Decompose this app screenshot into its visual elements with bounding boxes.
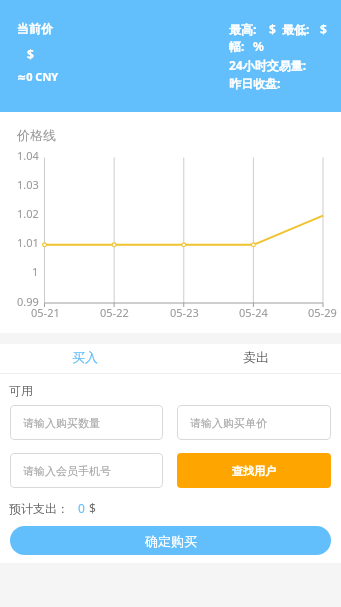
staticText: % [253, 38, 264, 54]
button[interactable]: 请输入购买单价 [177, 405, 331, 440]
staticText: 最高: [229, 21, 257, 37]
staticText: 昨日收盘: [229, 75, 281, 91]
staticText: 1.03 [17, 177, 39, 192]
button[interactable]: 卖出 [170, 344, 341, 373]
button[interactable]: 请输入会员手机号 [10, 453, 163, 488]
staticText: 买入 [72, 349, 98, 365]
staticText: $ [320, 21, 327, 37]
staticText: 卖出 [243, 349, 269, 365]
staticText: 请输入购买数量 [23, 416, 100, 430]
staticText: 1 [32, 264, 39, 279]
staticText: 可用 [9, 383, 33, 398]
button[interactable]: 请输入购买数量 [10, 405, 163, 440]
staticText: ≈0 CNY [17, 69, 59, 84]
staticText: 05-23 [170, 305, 199, 320]
staticText: $ [27, 46, 34, 62]
staticText: 确定购买 [145, 533, 197, 549]
staticText: 1.02 [17, 206, 39, 221]
staticText: 1.01 [17, 235, 39, 250]
staticText: 最低: [282, 21, 310, 37]
staticText: 预计支出： [9, 501, 69, 516]
staticText: 1.04 [17, 148, 39, 163]
staticText: 05-29 [308, 305, 337, 320]
staticText: 0 [78, 500, 85, 516]
staticText: 24小时交易量: [229, 57, 307, 73]
staticText: 0.99 [17, 294, 39, 309]
staticText: 05-21 [31, 305, 60, 320]
staticText: 请输入购买单价 [190, 416, 267, 430]
staticText: 幅: [229, 38, 245, 54]
staticText: 当前价 [17, 21, 53, 36]
staticText: $ [89, 500, 96, 516]
staticText: 05-24 [239, 305, 268, 320]
button[interactable]: 买入 [0, 344, 170, 373]
button[interactable]: 确定购买 [10, 526, 331, 555]
staticText: $ [269, 21, 276, 37]
staticText: 05-22 [100, 305, 129, 320]
staticText: 查找用户 [232, 464, 276, 478]
button[interactable]: 查找用户 [177, 453, 331, 488]
staticText: 请输入会员手机号 [23, 464, 111, 478]
staticText: 价格线 [17, 127, 56, 143]
